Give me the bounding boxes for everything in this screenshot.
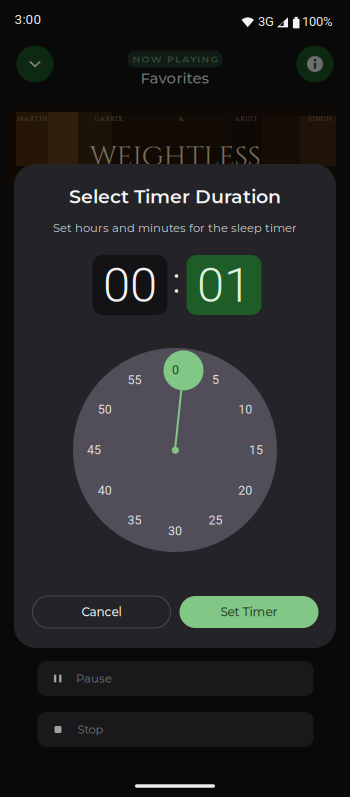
button[interactable]: Set Timer: [179, 596, 318, 628]
button[interactable]: Collapse: [16, 45, 53, 82]
staticText: Favorites: [140, 69, 209, 87]
button[interactable]: Cancel: [32, 596, 170, 628]
staticText: 20: [238, 483, 252, 498]
staticText: 5: [212, 372, 219, 387]
staticText: 35: [127, 513, 141, 527]
staticText: 50: [98, 402, 112, 417]
staticText: Pause: [76, 671, 112, 685]
staticText: Stop: [77, 722, 103, 736]
staticText: 00: [103, 256, 157, 314]
staticText: Set hours and minutes for the sleep time…: [53, 221, 297, 235]
staticText: &: [179, 115, 183, 123]
button[interactable]: Pause: [37, 661, 313, 696]
staticText: 45: [87, 443, 101, 457]
staticText: 3:00: [14, 12, 41, 27]
staticText: NOW PLAYING: [132, 53, 217, 65]
staticText: Set Timer: [220, 605, 277, 619]
button[interactable]: Hours: [92, 255, 167, 315]
staticText: 10: [238, 402, 252, 417]
staticText: GARRIX: [94, 115, 122, 123]
staticText: Cancel: [81, 605, 121, 619]
staticText: Select Timer Duration: [69, 185, 281, 208]
staticText: MARTIN: [17, 115, 47, 123]
staticText: 0: [172, 363, 179, 377]
staticText: SINGH: [308, 115, 331, 123]
button[interactable]: Minutes: [186, 255, 261, 315]
staticText: 100%: [302, 14, 333, 29]
staticText: 01: [197, 256, 251, 314]
staticText: 40: [98, 483, 112, 498]
staticText: 15: [249, 443, 263, 457]
button[interactable]: Info: [296, 45, 333, 82]
button[interactable]: Stop: [37, 712, 313, 747]
staticText: 3G: [258, 14, 274, 29]
staticText: 25: [208, 513, 222, 527]
staticText: ARIJIT: [235, 115, 257, 123]
staticText: WEIGHTLESS: [89, 138, 260, 176]
staticText: 55: [127, 373, 141, 387]
staticText: 30: [168, 524, 182, 538]
